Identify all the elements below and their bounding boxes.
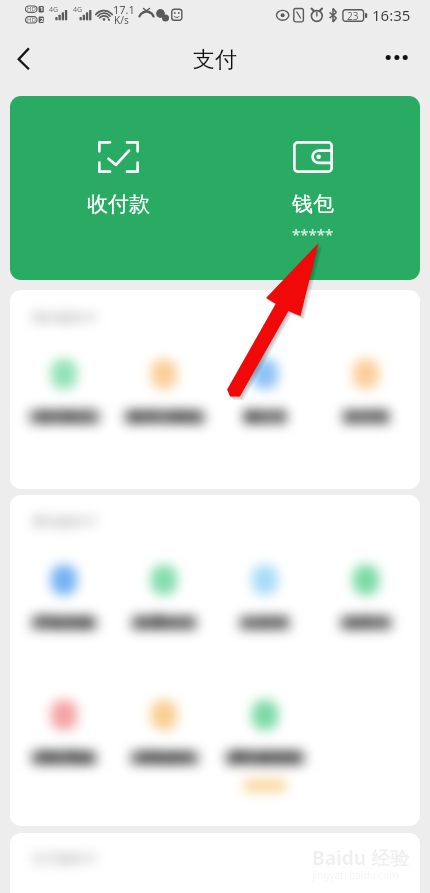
staticText: 收付款记: [37, 408, 93, 426]
staticText: 1: [40, 5, 44, 13]
button[interactable]: 钱包: [213, 96, 413, 280]
staticText: 手机充值: [36, 614, 92, 632]
staticText: 支付: [193, 46, 237, 74]
button[interactable]: 收付款: [18, 96, 218, 280]
button[interactable]: Back: [0, 35, 48, 85]
staticText: 钱包: [292, 191, 334, 217]
staticText: *****: [292, 224, 334, 244]
staticText: 账单与钱包: [130, 408, 200, 426]
staticText: HD: [27, 16, 36, 24]
staticText: 银行卡: [244, 408, 286, 426]
staticText: 2: [40, 16, 44, 24]
staticText: 公交付: [244, 614, 286, 632]
staticText: 理财通服: [36, 749, 92, 767]
staticText: 23: [347, 9, 359, 23]
staticText: 生活服务中: [32, 850, 97, 866]
staticText: 腾讯微视黄: [230, 749, 300, 767]
staticText: 4G: [73, 5, 83, 15]
staticText: HD: [27, 5, 36, 13]
staticText: 16:35: [372, 5, 411, 25]
staticText: 17.1: [113, 2, 135, 17]
staticText: 4G: [49, 5, 59, 15]
staticText: 收付款: [87, 191, 150, 217]
staticText: 信用卡: [345, 614, 387, 632]
staticText: Baidu 经验: [312, 845, 409, 871]
button[interactable]: More options: [378, 35, 430, 85]
staticText: jingyan.baidu.com: [312, 868, 399, 882]
staticText: 腾讯服务中: [32, 513, 97, 529]
staticText: K/s: [114, 13, 129, 27]
staticText: 支付安: [345, 408, 387, 426]
staticText: 保险服务: [137, 749, 193, 767]
staticText: 我的服务中: [32, 309, 97, 325]
staticText: 交通出行: [136, 614, 192, 632]
